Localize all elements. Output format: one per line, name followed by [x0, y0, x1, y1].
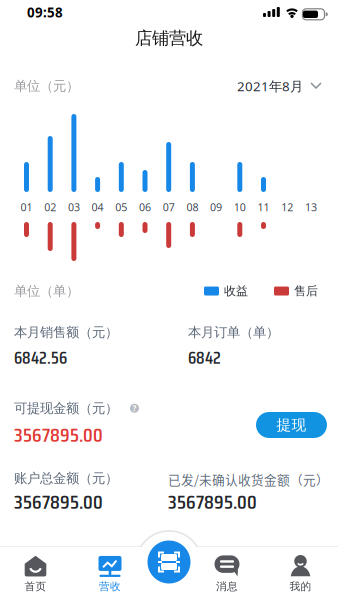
- button[interactable]: 2021年8月: [237, 77, 321, 95]
- staticText: 提现: [276, 416, 306, 434]
- button[interactable]: 首页: [5, 552, 65, 596]
- staticText: 13: [305, 200, 317, 214]
- staticText: 04: [92, 200, 104, 214]
- staticText: 11: [257, 200, 269, 214]
- staticText: 单位（单）: [14, 283, 79, 299]
- staticText: 我的: [289, 580, 311, 593]
- staticText: 本月订单（单）: [188, 324, 279, 340]
- button[interactable]: 扫一扫: [143, 536, 195, 588]
- staticText: 消息: [216, 580, 238, 593]
- button[interactable]: 消息: [197, 552, 257, 596]
- staticText: ?: [132, 403, 136, 413]
- staticText: 首页: [24, 580, 46, 593]
- button[interactable]: 营收: [80, 552, 140, 596]
- staticText: 3567895.00: [14, 419, 103, 450]
- button[interactable]: 可提现金额说明: [128, 402, 141, 415]
- button[interactable]: 提现: [256, 412, 327, 438]
- staticText: 账户总金额（元）: [14, 470, 118, 486]
- staticText: 3567895.00: [14, 486, 103, 517]
- staticText: 营收: [99, 580, 121, 593]
- staticText: 05: [115, 200, 127, 214]
- staticText: 可提现金额（元）: [14, 400, 118, 416]
- staticText: 03: [68, 200, 80, 214]
- staticText: 01: [20, 200, 32, 214]
- staticText: 08: [186, 200, 198, 214]
- staticText: 本月销售额（元）: [14, 324, 118, 340]
- staticText: 3567895.00: [168, 486, 257, 517]
- staticText: 06: [139, 200, 151, 214]
- staticText: 2021年8月: [237, 77, 303, 95]
- staticText: 6842.56: [14, 344, 67, 371]
- staticText: 单位（元）: [14, 78, 79, 94]
- staticText: 店铺营收: [135, 27, 203, 49]
- staticText: 10: [234, 200, 246, 214]
- staticText: 收益: [224, 284, 248, 298]
- staticText: 09: [210, 200, 222, 214]
- staticText: 售后: [294, 284, 318, 298]
- button[interactable]: 我的: [270, 552, 330, 596]
- staticText: 12: [281, 200, 293, 214]
- staticText: 6842: [188, 344, 221, 371]
- staticText: 07: [163, 200, 175, 214]
- staticText: 09:58: [27, 3, 63, 21]
- staticText: 02: [44, 200, 56, 214]
- staticText: 已发/未确认收货金额（元）: [168, 470, 329, 488]
